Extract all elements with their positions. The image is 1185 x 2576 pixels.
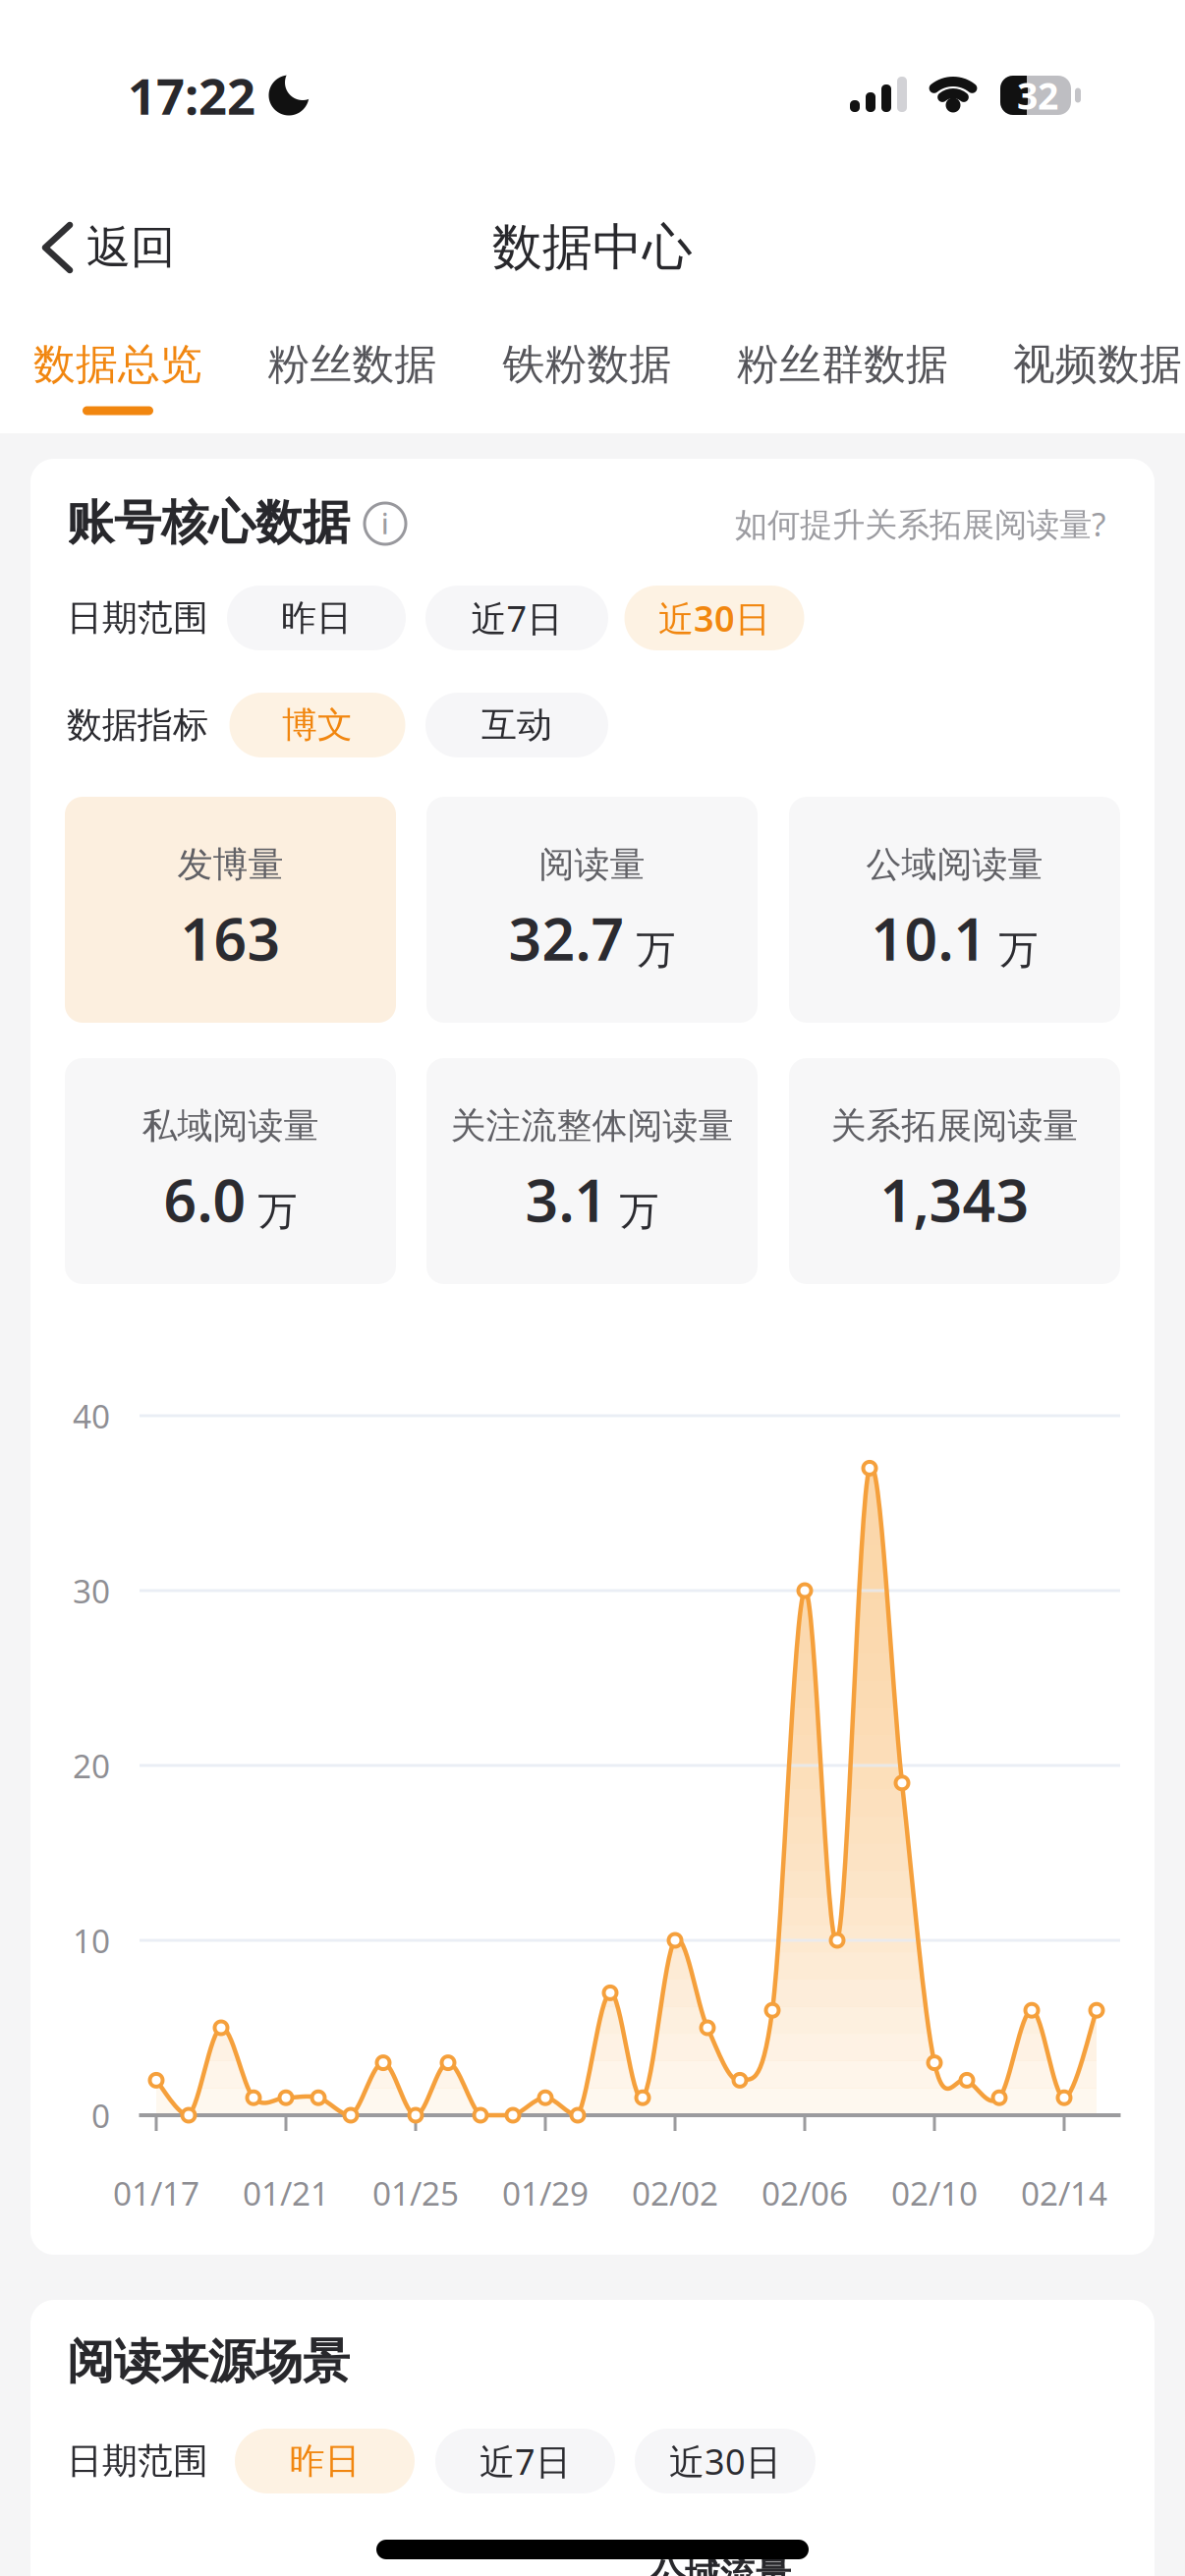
staticText: 近30日 [669,2438,781,2485]
staticText: 0 [91,2094,110,2137]
button[interactable]: 发博量 [65,797,396,1023]
button[interactable]: 昨日 [227,586,406,650]
staticText: 近30日 [658,594,770,641]
button[interactable]: 昨日 [235,2429,415,2493]
staticText: 铁粉数据 [503,339,672,390]
staticText: i [381,505,389,542]
staticText: 02/02 [632,2171,718,2215]
button[interactable]: 视频数据 [1013,339,1182,390]
staticText: 01/21 [243,2171,329,2215]
staticText: 阅读量 [539,843,645,886]
staticText: 视频数据 [1013,339,1182,390]
staticText: 01/25 [372,2171,459,2215]
button[interactable]: 粉丝群数据 [737,339,948,390]
staticText: 数据中心 [492,217,693,278]
staticText: 32.7 万 [508,900,676,977]
staticText: 20 [73,1744,110,1787]
staticText: 01/17 [113,2171,199,2215]
staticText: 01/29 [502,2171,589,2215]
staticText: 02/14 [1021,2171,1107,2215]
staticText: 粉丝群数据 [737,339,948,390]
staticText: 数据总览 [33,339,202,390]
staticText: 近7日 [480,2438,571,2485]
staticText: 10.1 万 [871,900,1038,977]
staticText: 公域流量 [649,2554,791,2576]
button[interactable]: 返回 [41,208,218,287]
button[interactable]: 如何提升关系拓展阅读量? [516,502,1105,545]
button[interactable]: 铁粉数据 [503,339,672,390]
staticText: 日期范围 [67,596,208,640]
staticText: 数据指标 [67,703,208,747]
staticText: 02/06 [762,2171,848,2215]
staticText: 昨日 [281,596,352,640]
staticText: 30 [73,1569,110,1612]
staticText: 返回 [86,220,175,275]
staticText: 发博量 [177,843,283,886]
staticText: 32 [1017,71,1058,120]
staticText: 40 [73,1394,110,1438]
staticText: 博文 [282,703,353,747]
staticText: 互动 [481,703,552,747]
staticText: 昨日 [289,2439,360,2483]
staticText: 账号核心数据 [67,494,350,552]
staticText: 关系拓展阅读量 [831,1104,1078,1148]
staticText: 1,343 [880,1161,1029,1238]
staticText: 阅读来源场景 [67,2333,350,2391]
button[interactable]: 近7日 [425,586,608,650]
button[interactable]: 说明 [365,503,406,544]
button[interactable]: 阅读量 [426,797,758,1023]
button[interactable]: 关系拓展阅读量 [789,1058,1120,1284]
staticText: 6.0 万 [164,1161,297,1238]
button[interactable]: 关注流整体阅读量 [426,1058,758,1284]
button[interactable]: 近30日 [624,586,804,650]
staticText: 公域阅读量 [866,843,1043,886]
staticText: 日期范围 [67,2439,208,2483]
staticText: 近7日 [471,594,563,641]
button[interactable]: 博文 [229,693,405,757]
staticText: 163 [180,900,281,977]
staticText: 17:22 [128,62,255,128]
staticText: 10 [73,1919,110,1962]
staticText: 关注流整体阅读量 [451,1104,734,1148]
staticText: 02/10 [891,2171,978,2215]
button[interactable]: 数据总览 [33,339,202,390]
staticText: 粉丝数据 [268,339,437,390]
button[interactable]: 私域阅读量 [65,1058,396,1284]
button[interactable]: 近30日 [635,2429,816,2493]
button[interactable]: 互动 [425,693,608,757]
staticText: 如何提升关系拓展阅读量? [735,502,1105,545]
button[interactable]: 粉丝数据 [268,339,437,390]
button[interactable]: 公域阅读量 [789,797,1120,1023]
button[interactable]: 近7日 [435,2429,615,2493]
staticText: 私域阅读量 [142,1104,319,1148]
staticText: 3.1 万 [525,1161,659,1238]
